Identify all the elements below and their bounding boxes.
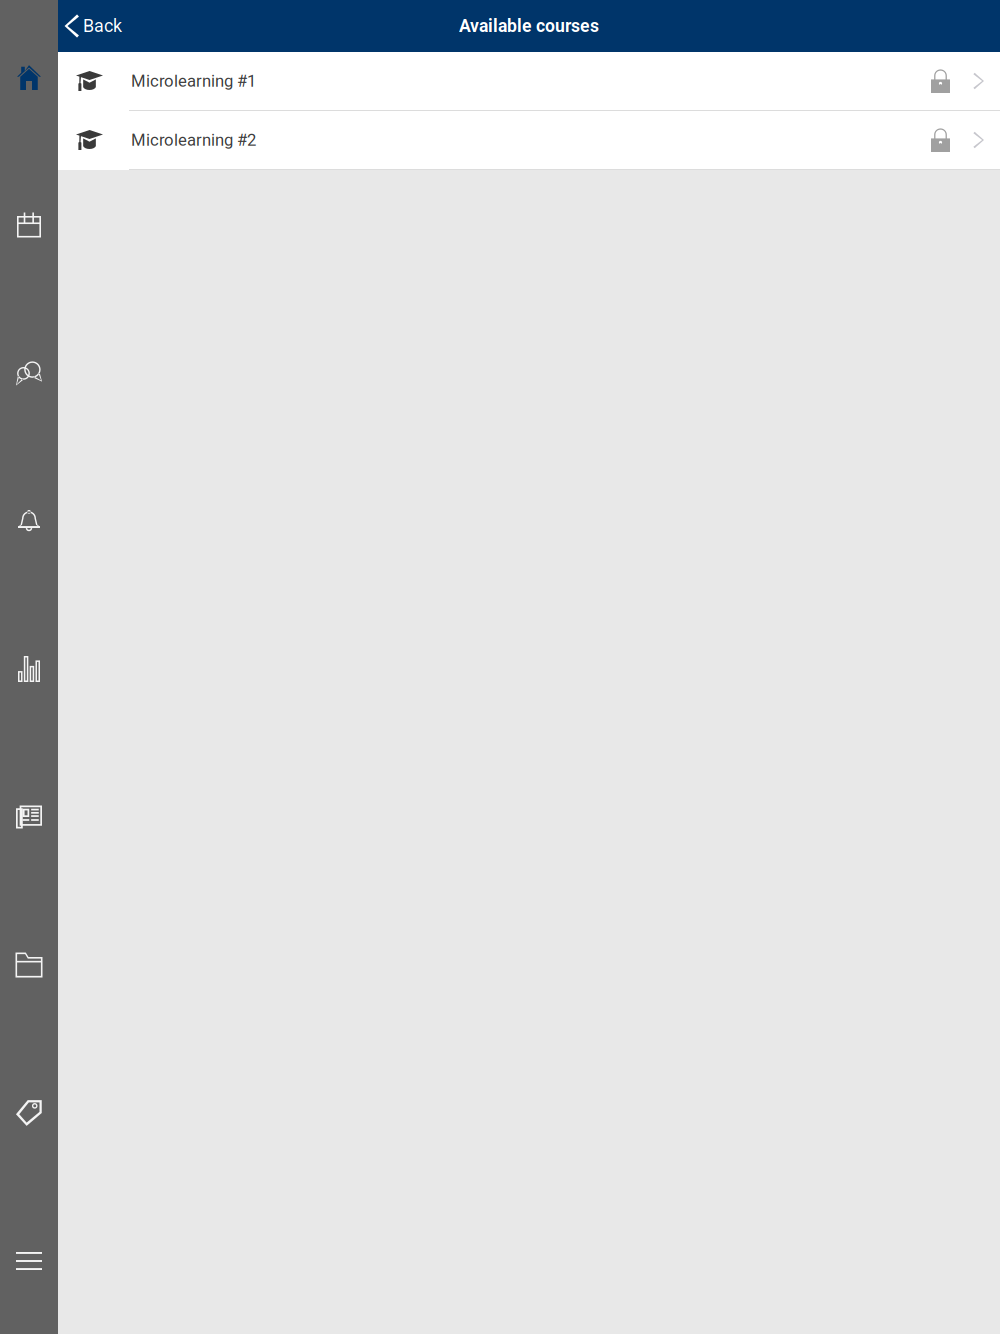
button[interactable]: Tags — [0, 1036, 58, 1184]
button[interactable]: Microlearning #2 — [58, 111, 1000, 170]
staticText: Available courses — [459, 16, 599, 36]
button[interactable]: Statistics — [0, 592, 58, 740]
button[interactable]: Microlearning #1 — [58, 52, 1000, 111]
button[interactable]: More — [0, 1184, 58, 1332]
staticText: Back — [83, 15, 122, 36]
button[interactable]: Back — [58, 0, 132, 52]
staticText: Microlearning #1 — [131, 71, 256, 91]
button[interactable]: Calendar — [0, 148, 58, 296]
staticText: Microlearning #2 — [131, 130, 256, 150]
button[interactable]: Home — [0, 0, 58, 148]
button[interactable]: Notifications — [0, 444, 58, 592]
button[interactable]: Messages — [0, 296, 58, 444]
button[interactable]: News — [0, 740, 58, 888]
button[interactable]: Documents — [0, 888, 58, 1036]
